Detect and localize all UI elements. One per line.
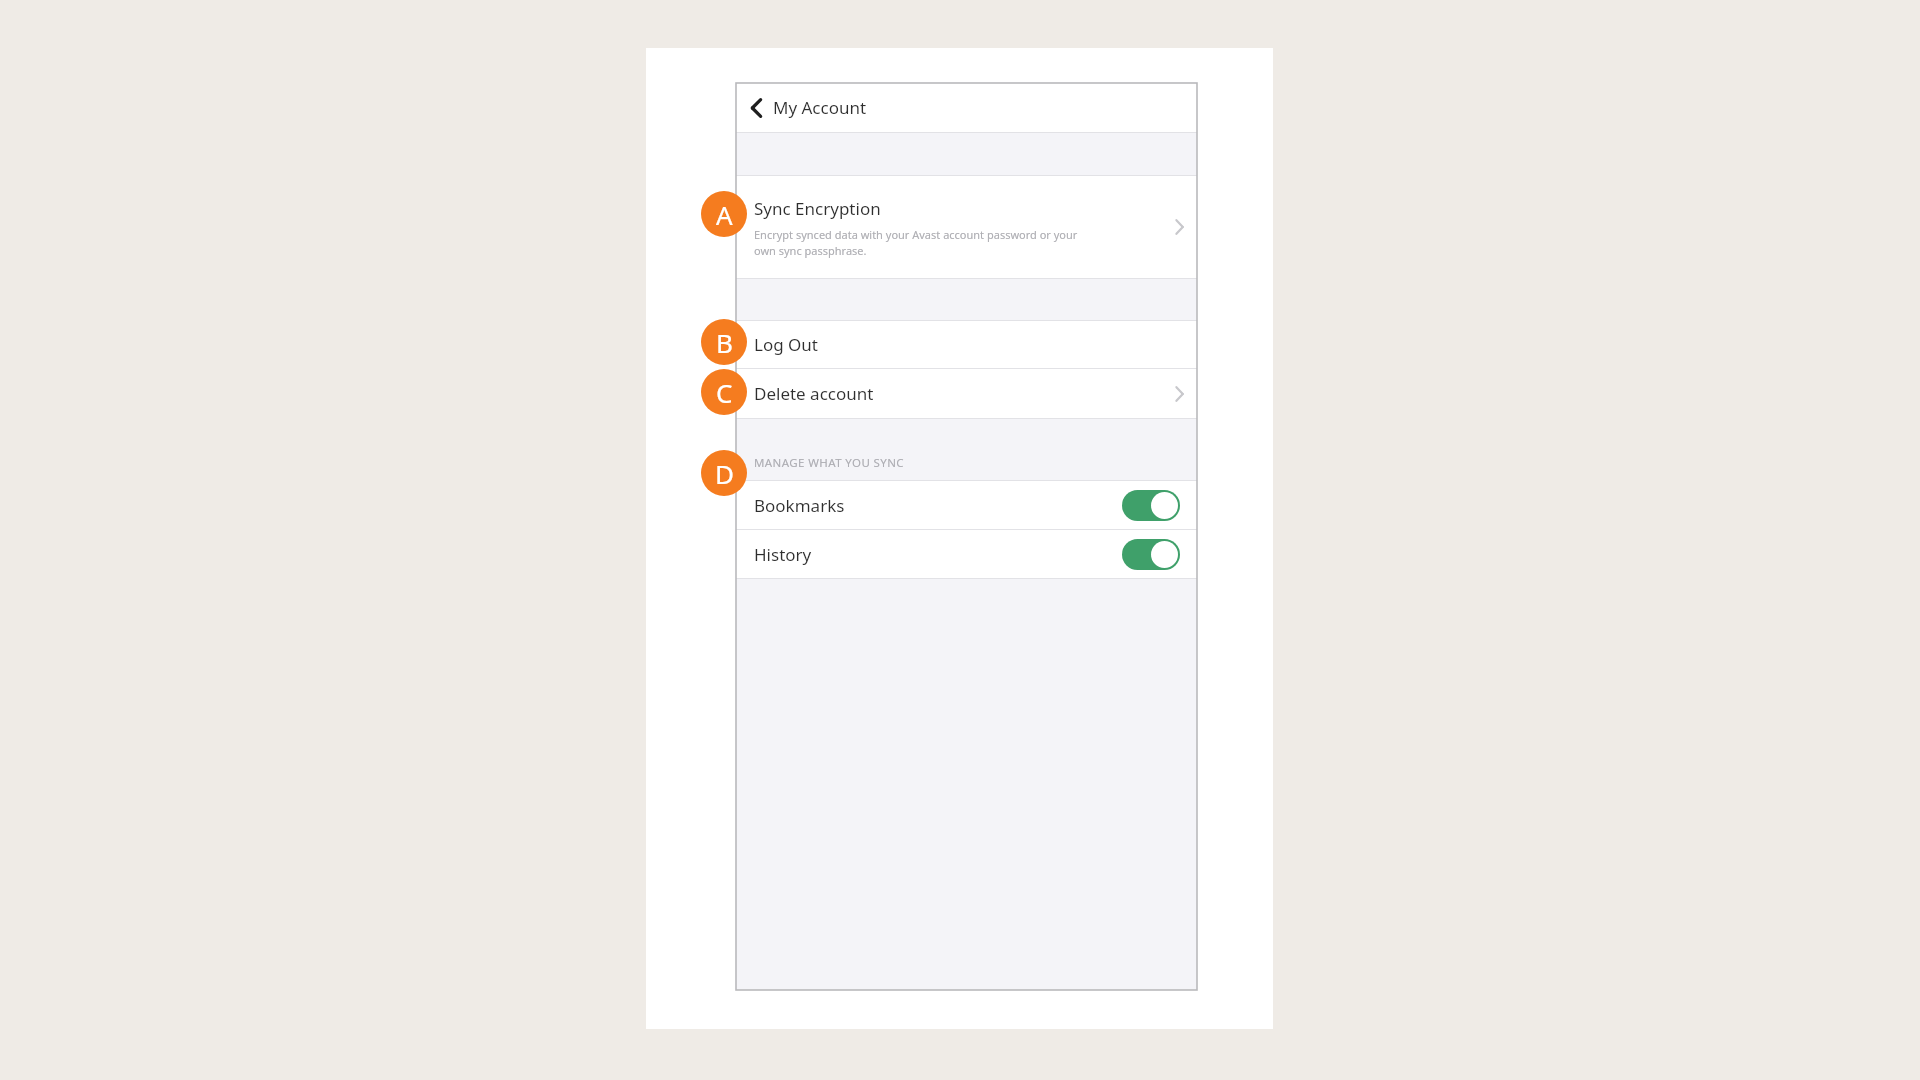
button[interactable]: Toggle on (1122, 539, 1180, 570)
staticText: My Account (773, 96, 867, 119)
button[interactable]: Delete account (736, 369, 1197, 418)
staticText: Bookmarks (754, 494, 845, 517)
staticText: C (716, 375, 733, 410)
button[interactable]: Toggle on (1122, 490, 1180, 521)
staticText: Encrypt synced data with your Avast acco… (754, 227, 1078, 258)
staticText: History (754, 543, 812, 566)
staticText: Sync Encryption (754, 197, 881, 220)
button[interactable]: Sync Encryption (736, 176, 1197, 278)
staticText: B (716, 325, 733, 360)
staticText: MANAGE WHAT YOU SYNC (754, 455, 905, 471)
button[interactable]: Back to My Account (736, 83, 1197, 132)
staticText: D (715, 456, 734, 491)
staticText: Log Out (754, 333, 818, 356)
button[interactable]: Bookmarks (736, 481, 1197, 529)
button[interactable]: History (736, 530, 1197, 578)
button[interactable]: Log Out (736, 321, 1197, 368)
staticText: Delete account (754, 382, 874, 405)
staticText: A (716, 197, 733, 232)
